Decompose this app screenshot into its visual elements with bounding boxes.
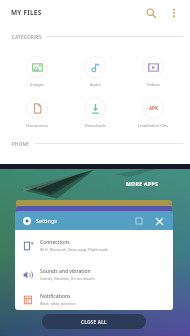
button[interactable]: Documents: [8, 97, 66, 128]
button[interactable]: Connections: [15, 231, 173, 260]
staticText: Installation files: [138, 123, 168, 128]
button[interactable]: Search: [141, 3, 160, 22]
button[interactable]: Downloads: [66, 97, 124, 128]
button[interactable]: APK: [124, 97, 182, 128]
staticText: CATEGORIES: [12, 34, 42, 40]
button[interactable]: More options: [164, 3, 183, 22]
staticText: CLOSE ALL: [81, 319, 107, 325]
staticText: Notifications: [40, 293, 71, 300]
button[interactable]: Audio: [66, 56, 124, 87]
staticText: Sounds and vibration: [40, 268, 91, 275]
staticText: Settings: [36, 217, 57, 224]
button[interactable]: Videos: [124, 56, 182, 87]
staticText: Wi-Fi, Bluetooth, Data usage, Flight mod…: [40, 247, 109, 252]
button[interactable]: Close: [152, 214, 166, 228]
staticText: Block, allow, prioritize: [40, 301, 76, 306]
button[interactable]: CLOSE ALL: [42, 314, 146, 329]
staticText: Images: [30, 82, 44, 87]
staticText: Videos: [147, 82, 160, 87]
staticText: Audio: [90, 82, 101, 87]
button[interactable]: Sounds and vibration: [15, 260, 173, 289]
staticText: Connections: [40, 239, 70, 246]
button[interactable]: Minimize: [132, 214, 146, 228]
button[interactable]: Notifications: [15, 289, 173, 310]
button[interactable]: Images: [8, 56, 66, 87]
staticText: Documents: [26, 123, 48, 128]
staticText: MY FILES: [11, 8, 42, 17]
staticText: PHONE: [12, 141, 30, 147]
staticText: MORE APPS: [126, 181, 159, 188]
staticText: Downloads: [85, 123, 106, 128]
staticText: APK: [149, 105, 158, 111]
staticText: Sounds, Vibration, Do not disturb: [40, 276, 95, 281]
